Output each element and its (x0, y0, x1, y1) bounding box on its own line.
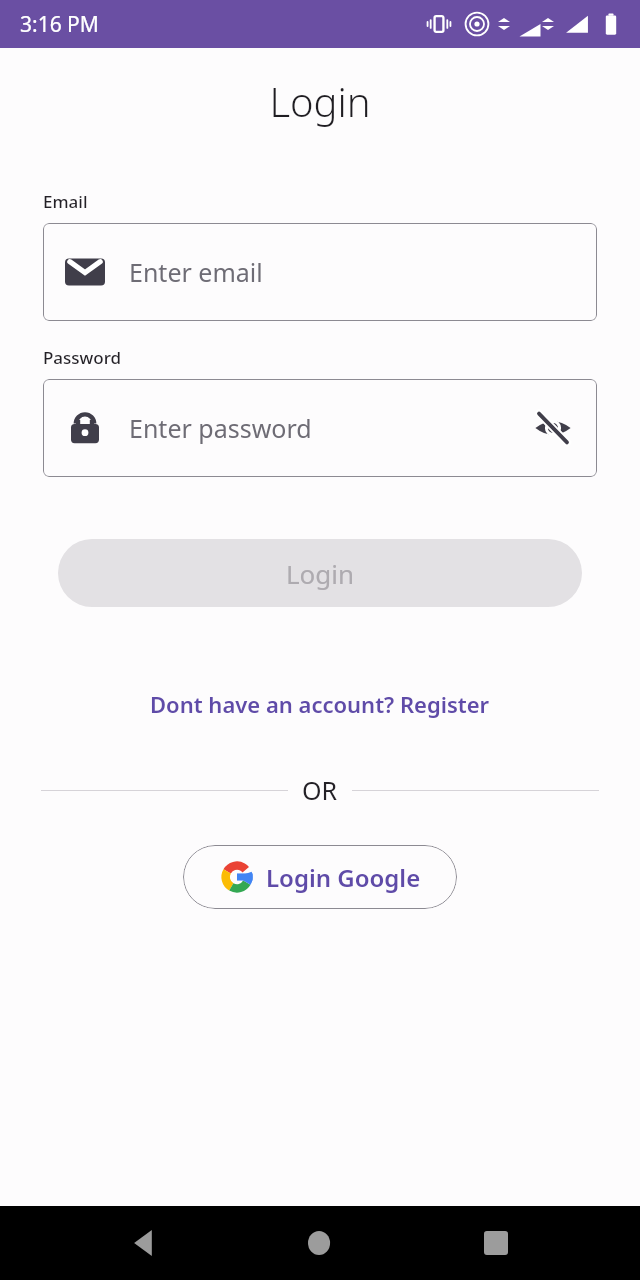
staticText: Login (286, 556, 355, 591)
staticText: Login (269, 74, 371, 128)
staticText: 3:16 PM (20, 10, 99, 39)
button[interactable]: Dont have an account? Register (142, 683, 498, 725)
staticText: Enter email (129, 255, 263, 289)
staticText: Login Google (266, 861, 421, 894)
staticText: Password (43, 346, 122, 369)
staticText: Email (43, 190, 88, 213)
staticText: Dont have an account? Register (150, 689, 490, 719)
button[interactable]: Login Google (183, 845, 457, 909)
button[interactable]: Recents (472, 1219, 520, 1267)
button[interactable]: Show password (529, 404, 577, 452)
button[interactable]: Back (120, 1219, 168, 1267)
button[interactable]: Login (58, 539, 582, 607)
button[interactable]: Enter password (43, 379, 597, 477)
staticText: OR (302, 773, 338, 807)
staticText: Enter password (129, 411, 529, 445)
button[interactable]: Home (296, 1219, 344, 1267)
button[interactable]: Enter email (43, 223, 597, 321)
